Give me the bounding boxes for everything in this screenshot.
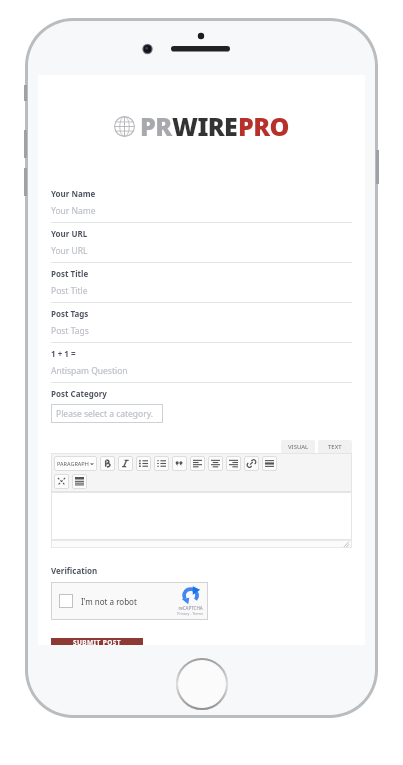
button[interactable]: VISUAL [281, 440, 315, 453]
staticText: 1 + 1 = [51, 348, 76, 359]
staticText: PARAGRAPH [57, 460, 89, 467]
staticText: Privacy - Terms [177, 611, 203, 616]
staticText: WIRE [172, 109, 238, 143]
staticText: I'm not a robot [81, 596, 137, 607]
button[interactable]: SUBMIT POST [51, 638, 143, 645]
staticText: Post Category [51, 388, 107, 399]
staticText: Post Title [51, 268, 89, 279]
button[interactable]: Toolbar toggle [72, 474, 87, 489]
staticText: TEXT [328, 443, 342, 451]
button[interactable]: Bold [100, 456, 115, 471]
button[interactable]: Align center [208, 456, 223, 471]
staticText: PR [140, 109, 172, 143]
button[interactable]: Your URL [51, 223, 352, 263]
button[interactable]: PARAGRAPH [57, 456, 94, 471]
button[interactable]: Blockquote [172, 456, 187, 471]
button[interactable]: Fullscreen [54, 474, 69, 489]
staticText: Post Tags [51, 308, 89, 319]
button[interactable]: Bulleted list [136, 456, 151, 471]
staticText: Antispam Question [51, 365, 128, 377]
button[interactable]: Numbered list [154, 456, 169, 471]
staticText: Post Tags [51, 325, 89, 337]
staticText: Your Name [51, 188, 96, 199]
staticText: reCAPTCHA [178, 605, 203, 611]
button[interactable]: TEXT [318, 440, 352, 453]
staticText: PRO [238, 109, 289, 143]
button[interactable]: Read more [262, 456, 277, 471]
button[interactable]: I'm not a robot [51, 582, 208, 620]
button[interactable]: 1 + 1 = [51, 343, 352, 383]
staticText: Your URL [51, 228, 88, 239]
button[interactable]: Post Title [51, 263, 352, 303]
staticText: VISUAL [288, 443, 309, 451]
staticText: Your Name [51, 205, 96, 217]
button[interactable]: Post Tags [51, 303, 352, 343]
button[interactable]: Please select a category. [51, 404, 163, 423]
staticText: Please select a category. [56, 408, 154, 420]
staticText: Verification [51, 565, 98, 576]
staticText: Post Title [51, 285, 88, 297]
staticText: SUBMIT POST [73, 638, 121, 645]
button[interactable]: Align right [226, 456, 241, 471]
button[interactable] [51, 492, 352, 540]
button[interactable]: Align left [190, 456, 205, 471]
staticText: Your URL [51, 245, 88, 257]
button[interactable]: Italic [118, 456, 133, 471]
button[interactable]: Insert link [244, 456, 259, 471]
button[interactable]: Your Name [51, 183, 352, 223]
